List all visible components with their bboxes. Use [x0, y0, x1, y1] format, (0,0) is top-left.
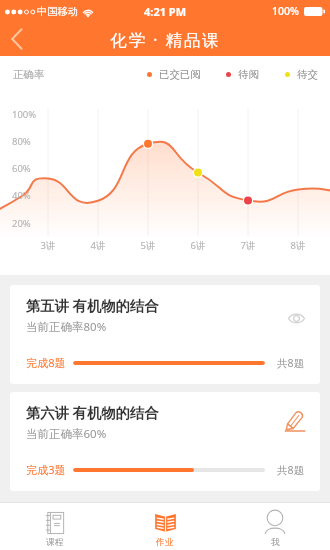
staticText: 当前正确率80% [26, 319, 107, 335]
staticText: 中国移动 [37, 5, 79, 18]
staticText: 已交已阅 [159, 68, 201, 81]
staticText: 正确率 [13, 68, 45, 81]
button[interactable]: 第五讲 有机物的结合 [10, 285, 320, 384]
staticText: 课程 [46, 537, 64, 548]
button[interactable]: Preview [281, 303, 311, 333]
staticText: 4讲 [87, 239, 109, 252]
staticText: 7讲 [237, 239, 259, 252]
staticText: 化学 · 精品课 [110, 28, 221, 51]
staticText: 当前正确率60% [26, 426, 107, 442]
staticText: 40% [12, 189, 31, 202]
button[interactable]: Back [0, 22, 36, 56]
button[interactable]: Edit [280, 406, 310, 436]
staticText: 100% [272, 4, 299, 18]
staticText: 作业 [156, 537, 174, 548]
button[interactable]: 课程 [0, 503, 110, 550]
staticText: 3讲 [37, 239, 59, 252]
staticText: 共8题 [277, 463, 305, 477]
staticText: 4:21 PM [144, 4, 187, 19]
staticText: 待交 [297, 68, 318, 81]
staticText: 我 [271, 537, 280, 548]
staticText: 100% [12, 108, 37, 121]
staticText: 第五讲 有机物的结合 [26, 296, 159, 316]
staticText: 完成3题 [26, 462, 66, 477]
staticText: 8讲 [287, 239, 309, 252]
staticText: 待阅 [238, 68, 259, 81]
staticText: 80% [12, 135, 31, 148]
staticText: 完成8题 [26, 355, 66, 370]
button[interactable]: 作业 [110, 503, 220, 550]
staticText: 共8题 [277, 356, 305, 370]
button[interactable]: 我 [220, 503, 330, 550]
staticText: 20% [12, 217, 31, 230]
staticText: 60% [12, 162, 31, 175]
staticText: 5讲 [137, 239, 159, 252]
staticText: 6讲 [187, 239, 209, 252]
button[interactable]: 第六讲 有机物的结合 [10, 392, 320, 491]
staticText: 第六讲 有机物的结合 [26, 403, 159, 423]
